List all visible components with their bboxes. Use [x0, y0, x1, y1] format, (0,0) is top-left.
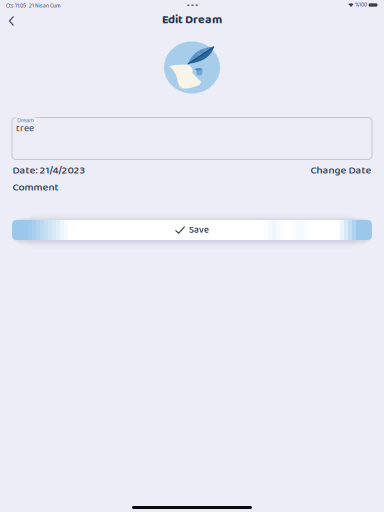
staticText: Comment	[12, 179, 58, 196]
staticText: Save	[189, 222, 209, 238]
staticText: Change Date	[310, 162, 371, 179]
staticText: 21 Nisan Cum	[26, 1, 61, 10]
staticText: Cts 11:05	[6, 1, 26, 10]
staticText: Edit Dream	[162, 10, 222, 30]
staticText: Dream	[17, 115, 34, 126]
button[interactable]: Change Date	[310, 162, 371, 179]
staticText: Date: 21/4/2023	[12, 162, 85, 179]
staticText: tree	[16, 120, 34, 136]
button[interactable]: Back	[4, 14, 22, 28]
button[interactable]: Save	[12, 220, 372, 240]
staticText: %100	[355, 0, 367, 9]
